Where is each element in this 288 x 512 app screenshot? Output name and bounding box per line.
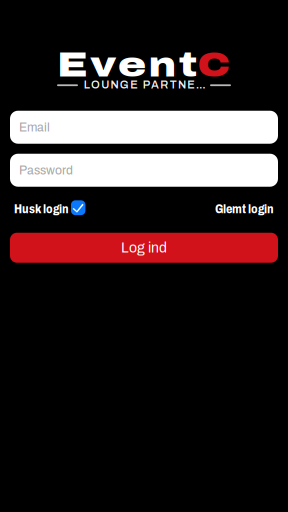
- button[interactable]: Glemt login: [215, 203, 274, 216]
- button[interactable]: Husk login: [14, 200, 85, 218]
- staticText: Password: [19, 163, 73, 177]
- staticText: Log ind: [121, 240, 167, 256]
- button[interactable]: Log ind: [10, 233, 278, 263]
- staticText: Glemt login: [215, 203, 274, 216]
- staticText: Event: [57, 46, 198, 84]
- staticText: Email: [19, 120, 50, 134]
- staticText: C: [198, 46, 231, 84]
- staticText: Husk login: [14, 203, 69, 216]
- staticText: LOUNGE PARTNER: [84, 80, 204, 91]
